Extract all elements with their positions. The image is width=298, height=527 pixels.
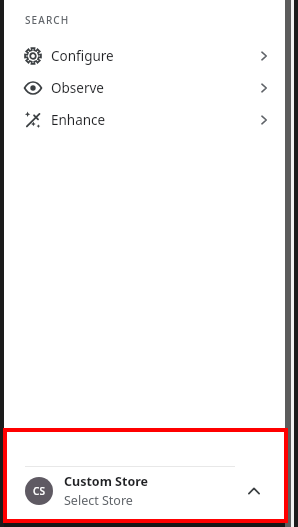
staticText: Custom Store: [64, 473, 149, 490]
staticText: Select Store: [64, 492, 133, 509]
staticText: Observe: [51, 79, 257, 97]
button[interactable]: CS: [4, 467, 285, 514]
staticText: CS: [33, 484, 45, 498]
staticText: Enhance: [51, 111, 257, 129]
staticText: SEARCH: [25, 13, 70, 27]
button[interactable]: Configure: [4, 40, 285, 72]
button[interactable]: Enhance: [4, 104, 285, 136]
button[interactable]: Collapse account menu: [237, 474, 271, 508]
staticText: Configure: [51, 47, 257, 65]
button[interactable]: Observe: [4, 72, 285, 104]
